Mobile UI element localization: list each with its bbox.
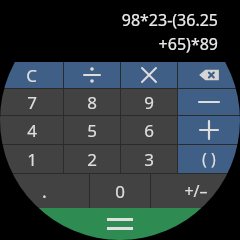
button[interactable]: 8 xyxy=(64,89,120,115)
staticText: 3 xyxy=(144,148,154,171)
button[interactable]: Backspace xyxy=(178,62,240,88)
staticText: 8 xyxy=(87,91,97,114)
button[interactable]: 7 xyxy=(0,89,63,115)
staticText: +/– xyxy=(184,180,208,202)
button[interactable]: . xyxy=(0,174,89,208)
button[interactable]: 9 xyxy=(121,89,177,115)
staticText: 6 xyxy=(144,119,154,142)
staticText: +65)*89 xyxy=(158,33,218,55)
button[interactable]: Plus xyxy=(178,116,240,144)
staticText: 1 xyxy=(27,148,37,171)
button[interactable]: 4 xyxy=(0,116,63,144)
button[interactable]: 0 xyxy=(90,174,150,208)
staticText: . xyxy=(42,179,47,204)
button[interactable]: 5 xyxy=(64,116,120,144)
button[interactable]: ( ) xyxy=(178,145,240,173)
button[interactable]: Divide xyxy=(64,62,120,88)
button[interactable]: +/– xyxy=(151,174,240,208)
button[interactable]: Equals xyxy=(0,208,240,240)
staticText: 9 xyxy=(144,91,154,114)
button[interactable]: Multiply xyxy=(121,62,177,88)
button[interactable]: 6 xyxy=(121,116,177,144)
button[interactable]: Minus xyxy=(178,89,240,115)
staticText: 0 xyxy=(115,180,125,203)
staticText: 7 xyxy=(27,91,37,114)
staticText: C xyxy=(26,64,37,87)
staticText: 2 xyxy=(87,148,97,171)
staticText: 5 xyxy=(87,119,97,142)
button[interactable]: 1 xyxy=(0,145,63,173)
staticText: 4 xyxy=(27,119,37,142)
button[interactable]: 3 xyxy=(121,145,177,173)
staticText: ( ) xyxy=(202,148,216,170)
button[interactable]: 2 xyxy=(64,145,120,173)
button[interactable]: C xyxy=(0,62,63,88)
staticText: 98*23-(36.25 xyxy=(121,9,218,31)
